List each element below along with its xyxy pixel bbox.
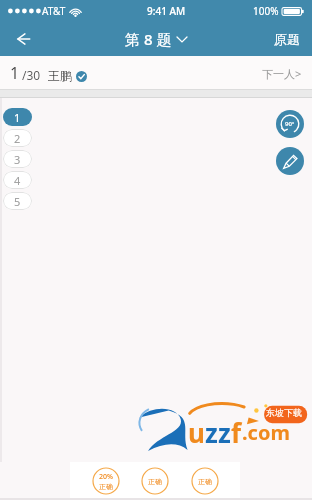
button[interactable]: 2 — [3, 129, 32, 147]
staticText: z — [218, 415, 231, 450]
button[interactable]: 3 — [3, 150, 32, 168]
button[interactable]: 1 — [3, 108, 32, 126]
button[interactable]: Rotate 90 degrees — [276, 110, 304, 138]
staticText: 90° — [285, 120, 295, 128]
staticText: .com — [242, 419, 290, 446]
staticText: 4 — [14, 173, 21, 188]
staticText: 100% — [253, 4, 279, 18]
staticText: 第 8 题 — [125, 29, 172, 49]
staticText: f — [231, 415, 242, 450]
button[interactable]: 下一人 — [254, 60, 312, 87]
button[interactable]: 原题 — [268, 25, 306, 53]
staticText: AT&T — [42, 4, 66, 18]
staticText: 2 — [14, 131, 21, 146]
staticText: 王鹏 — [48, 68, 72, 83]
staticText: z — [205, 415, 218, 450]
button[interactable]: 正确 — [191, 467, 219, 495]
staticText: 5 — [14, 194, 21, 209]
staticText: 东坡下载 — [266, 407, 302, 418]
staticText: 9:41 AM — [147, 4, 186, 18]
staticText: 1 — [14, 110, 21, 125]
staticText: 1 — [10, 62, 20, 84]
staticText: 20% — [99, 472, 113, 482]
staticText: 正确 — [99, 482, 113, 491]
button[interactable]: Edit — [276, 147, 304, 175]
staticText: /30 — [22, 67, 41, 83]
button[interactable]: 5 — [3, 192, 32, 210]
button[interactable]: 20% — [92, 467, 120, 495]
staticText: u — [188, 415, 205, 450]
staticText: 原题 — [274, 31, 300, 47]
staticText: 下一人 — [262, 67, 295, 81]
staticText: 正确 — [198, 477, 212, 486]
button[interactable]: 第 8 题 — [125, 29, 187, 49]
staticText: > — [295, 66, 302, 81]
staticText: 3 — [14, 152, 21, 167]
button[interactable]: Back — [6, 22, 40, 56]
staticText: 正确 — [148, 477, 162, 486]
button[interactable]: 4 — [3, 171, 32, 189]
button[interactable]: 正确 — [141, 467, 169, 495]
